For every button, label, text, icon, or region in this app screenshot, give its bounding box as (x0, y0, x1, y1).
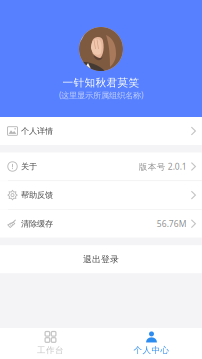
staticText: (这里显示所属组织名称) (59, 89, 143, 101)
staticText: 关于 (21, 161, 37, 172)
button[interactable]: 个人中心 (101, 328, 202, 359)
button[interactable]: 清除缓存 (0, 210, 202, 238)
staticText: 56.76M (157, 218, 187, 229)
button[interactable]: 个人详情 (0, 117, 202, 145)
staticText: 版本号 2.0.1 (139, 161, 187, 172)
staticText: 个人详情 (21, 126, 53, 136)
button[interactable]: 退出登录 (0, 245, 202, 273)
button[interactable]: 帮助反馈 (0, 181, 202, 209)
button[interactable]: 关于 (0, 152, 202, 180)
staticText: 帮助反馈 (21, 190, 53, 200)
staticText: 退出登录 (83, 254, 119, 265)
staticText: 一针知秋君莫笑 (62, 76, 139, 89)
staticText: 工作台 (37, 345, 64, 355)
staticText: 清除缓存 (21, 219, 53, 229)
button[interactable]: 工作台 (0, 328, 101, 359)
staticText: 个人中心 (133, 345, 169, 355)
